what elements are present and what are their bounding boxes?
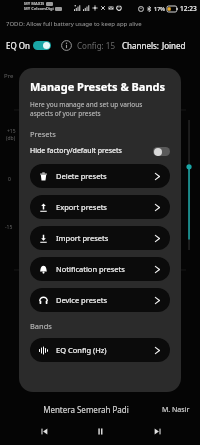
staticText: Export presets xyxy=(56,202,107,212)
button[interactable]: Device presets xyxy=(30,288,170,312)
button[interactable]: Joined xyxy=(162,40,186,51)
button[interactable]: Delete presets xyxy=(30,164,170,188)
staticText: (db) xyxy=(6,135,16,142)
button[interactable]: Info xyxy=(61,40,72,51)
button[interactable]: Notification presets xyxy=(30,257,170,281)
staticText: Bands xyxy=(30,321,52,331)
button[interactable]: Pause xyxy=(87,422,113,440)
staticText: Manage Presets & Bands xyxy=(30,79,166,94)
button[interactable]: Export presets xyxy=(30,195,170,219)
staticText: +15 xyxy=(7,128,16,135)
staticText: Device presets xyxy=(56,295,107,305)
staticText: Hide factory/default presets xyxy=(30,146,122,156)
staticText: Notification presets xyxy=(56,264,125,274)
button[interactable]: Import presets xyxy=(30,226,170,250)
staticText: -15 xyxy=(5,224,13,231)
staticText: Mentera Semerah Padi xyxy=(10,404,162,415)
staticText: 12:23 xyxy=(180,4,197,13)
button[interactable]: EQ Config (Hz) xyxy=(30,338,170,362)
button[interactable]: Next xyxy=(144,422,170,440)
button[interactable]: Config: 15 xyxy=(77,40,115,51)
staticText: M. Nasir xyxy=(162,405,190,415)
staticText: Import presets xyxy=(56,233,109,243)
staticText: 7ODO: Allow full battery usage to keep a… xyxy=(6,20,142,28)
staticText: Delete presets xyxy=(56,171,107,181)
staticText: Presets xyxy=(30,129,56,139)
staticText: MY MAXIS xyxy=(24,1,45,6)
staticText: EQ On xyxy=(6,40,30,51)
button[interactable]: EQ On xyxy=(6,40,51,51)
button[interactable]: Hide factory/default presets xyxy=(30,146,170,156)
staticText: 17% xyxy=(154,5,165,12)
staticText: Pre xyxy=(4,72,14,80)
staticText: MY CelcomDigi xyxy=(24,6,54,11)
staticText: Here you manage and set up various aspec… xyxy=(30,100,143,118)
staticText: 0 xyxy=(8,176,11,183)
staticText: Channels: xyxy=(122,40,159,51)
staticText: EQ Config (Hz) xyxy=(56,345,107,355)
button[interactable]: Previous xyxy=(31,422,57,440)
